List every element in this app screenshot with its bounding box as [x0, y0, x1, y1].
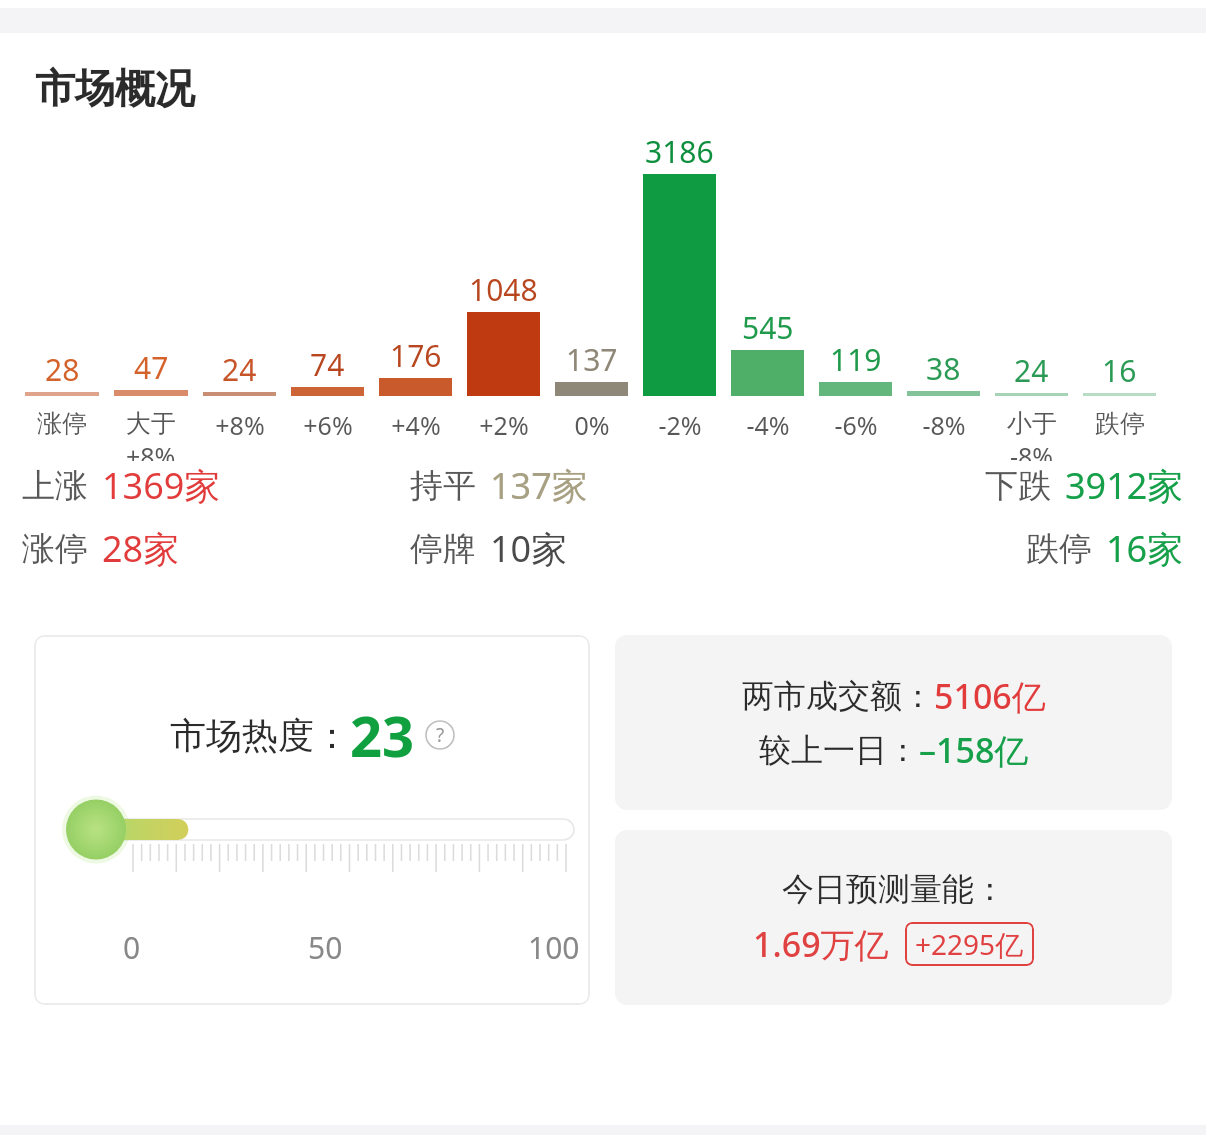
- staticText: 两市成交额：: [742, 676, 934, 716]
- staticText: 545: [742, 307, 794, 348]
- staticText: 5106亿: [934, 673, 1046, 719]
- button[interactable]: 28: [25, 131, 99, 439]
- button[interactable]: 16: [1083, 131, 1156, 439]
- staticText: 10家: [490, 524, 568, 573]
- button[interactable]: 47: [114, 131, 188, 461]
- staticText: 市场热度：: [170, 713, 350, 758]
- staticText: 涨停: [22, 528, 88, 570]
- staticText: 涨停: [37, 408, 87, 439]
- staticText: 持平: [410, 465, 476, 507]
- staticText: 大于: [126, 408, 176, 439]
- staticText: 16家: [1106, 524, 1184, 573]
- staticText: 市场概况: [35, 63, 195, 113]
- staticText: 28: [45, 349, 80, 390]
- button[interactable]: 帮助: [425, 720, 455, 750]
- staticText: 较上一日：: [759, 730, 919, 770]
- button[interactable]: 两市成交额：: [615, 635, 1172, 810]
- staticText: 100: [528, 927, 580, 968]
- button[interactable]: 119: [819, 131, 892, 442]
- button[interactable]: 涨停: [22, 524, 180, 573]
- button[interactable]: 下跌: [985, 461, 1184, 510]
- staticText: 16: [1102, 350, 1137, 391]
- button[interactable]: 今日预测量能：: [615, 830, 1172, 1005]
- staticText: 0%: [574, 408, 610, 442]
- staticText: +2%: [479, 408, 529, 442]
- staticText: 跌停: [1026, 528, 1092, 570]
- staticText: 小于: [1007, 408, 1057, 439]
- staticText: +2295亿: [915, 925, 1024, 963]
- button[interactable]: 24: [203, 131, 276, 442]
- button[interactable]: 跌停: [1026, 524, 1184, 573]
- staticText: 今日预测量能：: [782, 869, 1006, 909]
- staticText: 1.69万亿: [753, 921, 889, 967]
- staticText: -6%: [834, 408, 878, 442]
- staticText: 23: [350, 697, 415, 773]
- staticText: 1369家: [102, 461, 221, 510]
- staticText: +6%: [303, 408, 353, 442]
- staticText: +8%: [126, 439, 176, 461]
- button[interactable]: 38: [907, 131, 980, 442]
- staticText: 176: [390, 335, 442, 376]
- staticText: 24: [1014, 350, 1049, 391]
- staticText: 28家: [102, 524, 180, 573]
- staticText: 3912家: [1065, 461, 1184, 510]
- staticText: 0: [123, 927, 141, 968]
- staticText: 1048: [469, 269, 538, 310]
- button[interactable]: 545: [731, 131, 804, 442]
- staticText: 38: [926, 348, 961, 389]
- button[interactable]: 上涨: [22, 461, 221, 510]
- staticText: –158亿: [919, 727, 1029, 773]
- staticText: 47: [134, 347, 169, 388]
- staticText: 下跌: [985, 465, 1051, 507]
- staticText: 137家: [490, 461, 588, 510]
- button[interactable]: 176: [379, 131, 452, 442]
- staticText: 跌停: [1095, 408, 1145, 439]
- staticText: 74: [310, 344, 345, 385]
- staticText: +8%: [215, 408, 265, 442]
- button[interactable]: 3186: [643, 131, 716, 442]
- staticText: ?: [436, 722, 445, 748]
- staticText: 3186: [645, 131, 714, 172]
- button[interactable]: 持平: [410, 461, 588, 510]
- staticText: -2%: [658, 408, 702, 442]
- staticText: 50: [308, 927, 343, 968]
- staticText: -4%: [746, 408, 790, 442]
- staticText: 停牌: [410, 528, 476, 570]
- button[interactable]: 24: [995, 131, 1068, 461]
- button[interactable]: 1048: [467, 131, 540, 442]
- staticText: 137: [566, 339, 618, 380]
- button[interactable]: 74: [291, 131, 364, 442]
- button[interactable]: 市场热度：: [34, 635, 590, 1005]
- button[interactable]: 停牌: [410, 524, 568, 573]
- staticText: -8%: [1010, 439, 1054, 461]
- staticText: 119: [830, 339, 882, 380]
- staticText: 上涨: [22, 465, 88, 507]
- staticText: +4%: [391, 408, 441, 442]
- staticText: -8%: [922, 408, 966, 442]
- button[interactable]: 137: [555, 131, 628, 442]
- staticText: 24: [222, 349, 257, 390]
